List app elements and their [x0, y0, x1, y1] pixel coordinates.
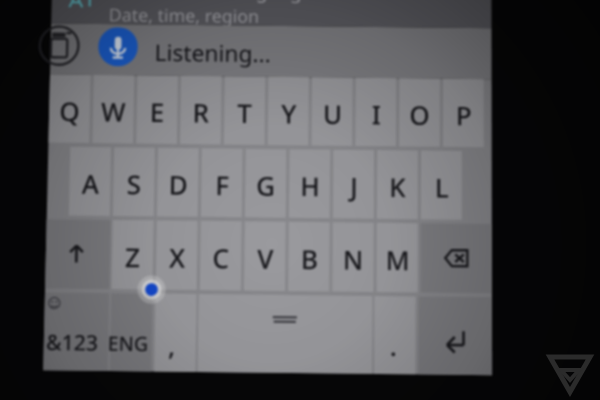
- button[interactable]: A: [69, 147, 111, 216]
- button[interactable]: .: [374, 296, 416, 374]
- staticText: .: [389, 327, 398, 363]
- staticText: E: [149, 94, 165, 129]
- staticText: Date, time, region: [108, 3, 259, 29]
- staticText: K: [389, 169, 406, 204]
- button[interactable]: T: [224, 76, 265, 145]
- staticText: B: [300, 241, 319, 276]
- button[interactable]: B: [288, 222, 330, 291]
- button[interactable]: [43, 74, 495, 375]
- button[interactable]: C: [200, 221, 242, 291]
- button[interactable]: Backspace: [420, 223, 493, 293]
- button[interactable]: Listening...: [154, 36, 272, 68]
- button[interactable]: Y: [268, 77, 309, 145]
- button[interactable]: S: [113, 147, 155, 216]
- button[interactable]: X: [155, 220, 198, 290]
- button[interactable]: L: [420, 151, 462, 220]
- staticText: &123: [45, 328, 98, 358]
- button[interactable]: M: [376, 223, 418, 292]
- staticText: F: [215, 167, 229, 202]
- button[interactable]: [50, 23, 492, 79]
- staticText: W: [100, 94, 126, 129]
- staticText: ENG: [107, 329, 149, 357]
- button[interactable]: Clipboard: [38, 25, 80, 66]
- button[interactable]: I: [355, 78, 397, 146]
- button[interactable]: &123: [43, 292, 109, 371]
- staticText: C: [212, 240, 229, 275]
- staticText: X: [169, 239, 185, 275]
- button[interactable]: O: [399, 78, 441, 147]
- button[interactable]: H: [289, 149, 330, 218]
- button[interactable]: K: [376, 150, 419, 219]
- button[interactable]: Shift: [45, 219, 111, 289]
- staticText: R: [192, 95, 209, 129]
- button[interactable]: Microphone: [98, 27, 138, 67]
- button[interactable]: ,: [154, 294, 197, 372]
- staticText: O: [409, 97, 430, 132]
- staticText: V: [257, 240, 273, 276]
- button[interactable]: Enter: [418, 296, 493, 375]
- button[interactable]: R: [180, 76, 222, 144]
- button[interactable]: E: [136, 75, 178, 144]
- button[interactable]: Z: [111, 220, 154, 290]
- staticText: T: [237, 95, 252, 130]
- button[interactable]: ENG: [110, 293, 152, 371]
- staticText: Time & language: [160, 0, 313, 5]
- staticText: A: [81, 166, 100, 201]
- staticText: J: [350, 169, 358, 204]
- staticText: Listening...: [154, 36, 272, 68]
- button[interactable]: W: [92, 75, 134, 143]
- button[interactable]: N: [332, 222, 374, 292]
- staticText: U: [322, 96, 343, 131]
- button[interactable]: D: [157, 148, 199, 217]
- button[interactable]: G: [245, 149, 286, 218]
- staticText: G: [256, 168, 275, 203]
- button[interactable]: Q: [48, 74, 91, 143]
- staticText: ,: [167, 327, 176, 363]
- staticText: Z: [125, 239, 140, 274]
- staticText: S: [126, 166, 142, 201]
- button[interactable]: [51, 0, 492, 28]
- staticText: L: [434, 170, 449, 205]
- button[interactable]: F: [201, 148, 243, 217]
- staticText: M: [385, 242, 410, 277]
- staticText: D: [168, 167, 188, 202]
- button[interactable]: P: [442, 79, 484, 147]
- button[interactable]: Space: [197, 294, 373, 374]
- staticText: P: [455, 98, 472, 132]
- button[interactable]: U: [311, 77, 353, 146]
- button[interactable]: V: [244, 221, 286, 291]
- staticText: Q: [59, 93, 80, 128]
- staticText: I: [371, 97, 382, 131]
- staticText: Y: [281, 96, 297, 130]
- staticText: N: [342, 241, 364, 277]
- button[interactable]: J: [333, 150, 375, 219]
- staticText: H: [300, 168, 320, 203]
